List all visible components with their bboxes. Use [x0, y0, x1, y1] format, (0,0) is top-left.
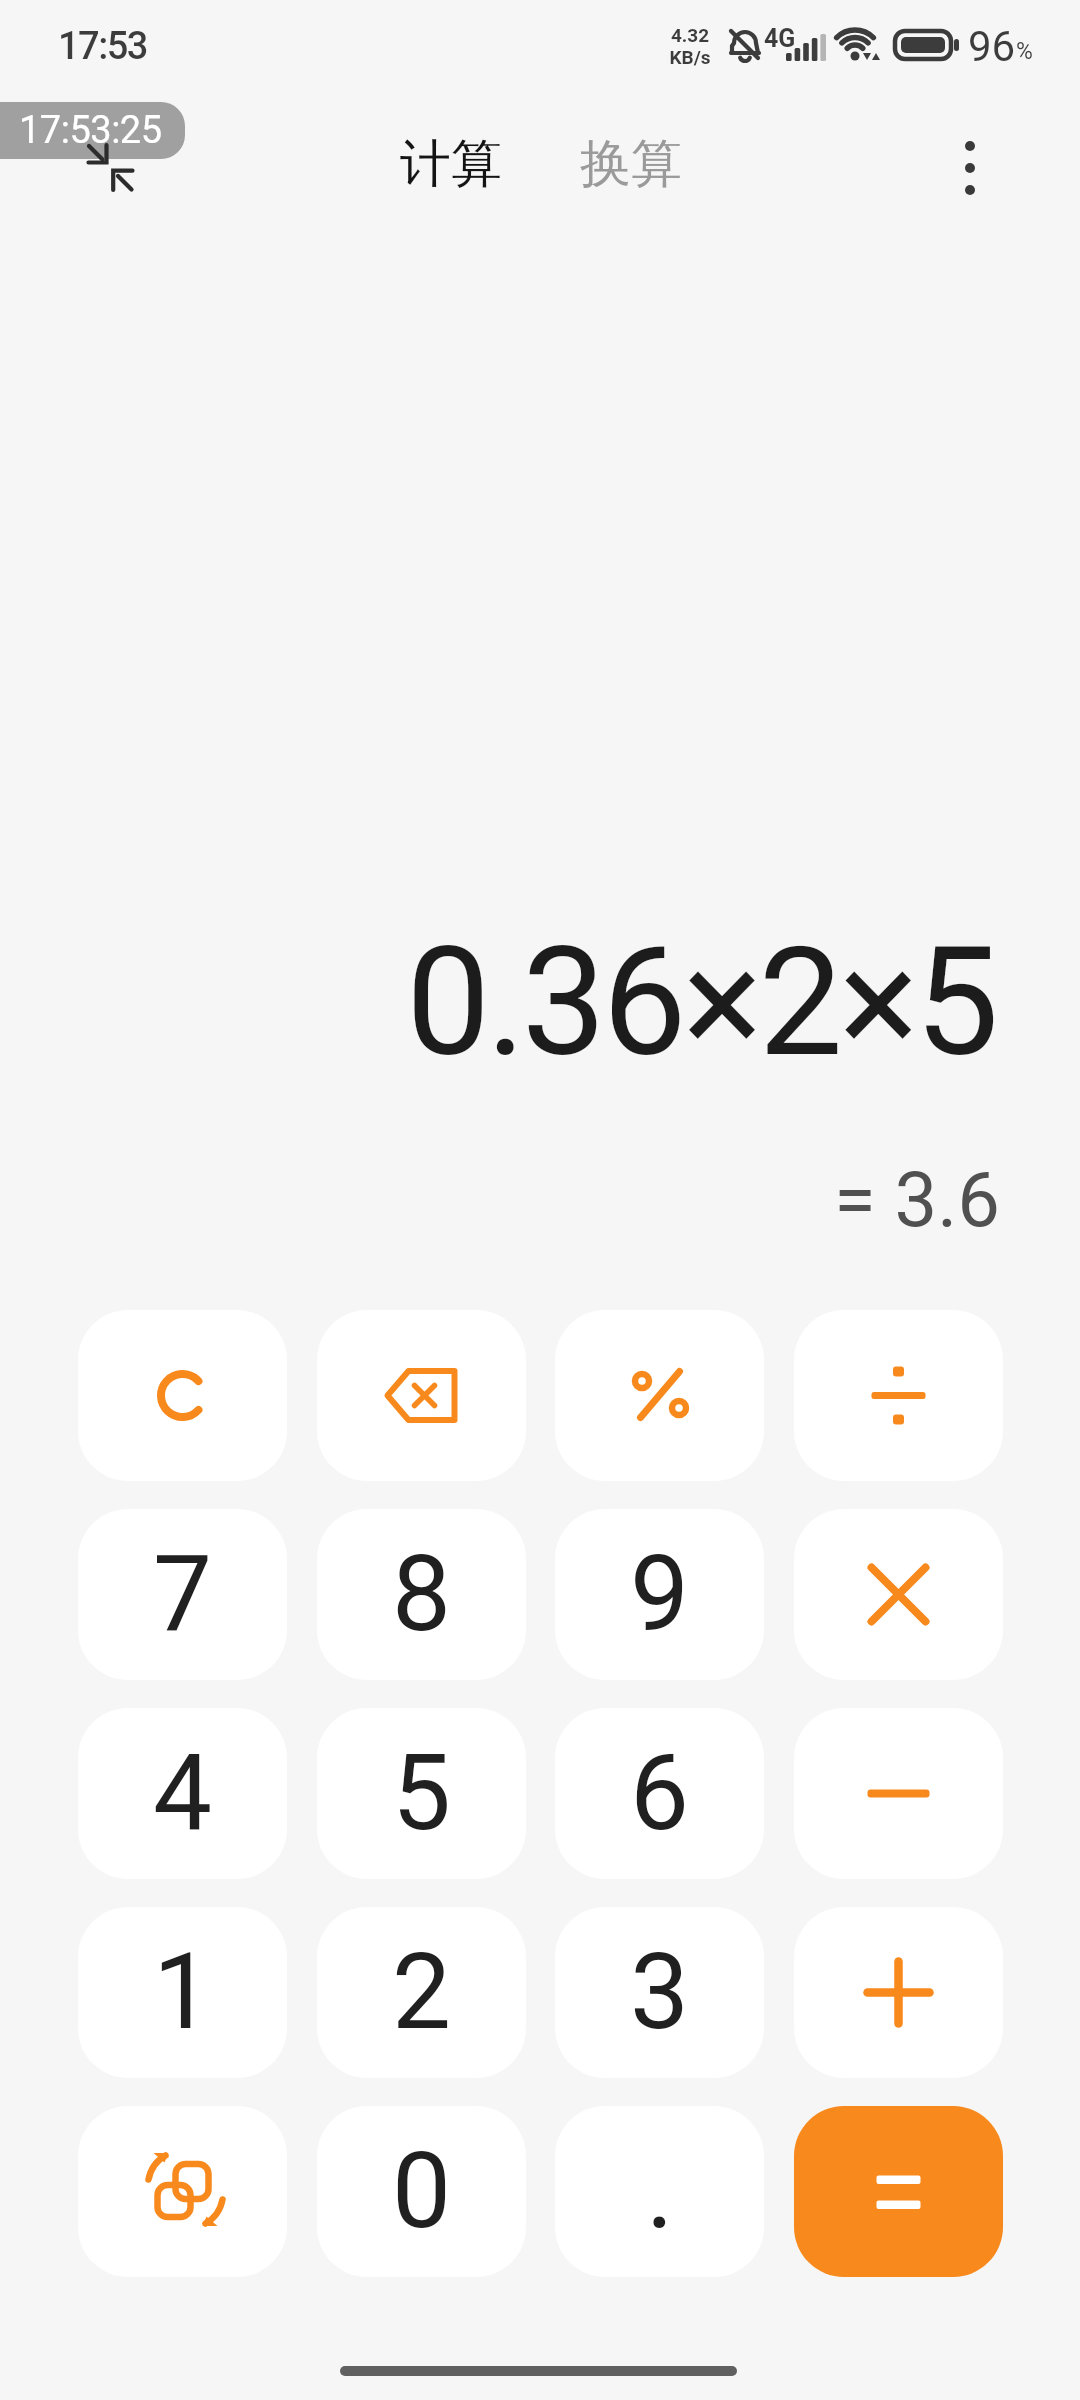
- button[interactable]: 0: [317, 2106, 526, 2277]
- button[interactable]: [794, 2106, 1003, 2277]
- staticText: 8: [392, 1533, 452, 1656]
- staticText: 换算: [580, 132, 682, 196]
- button[interactable]: 6: [555, 1708, 764, 1879]
- staticText: 5: [392, 1732, 452, 1855]
- button[interactable]: [78, 2106, 287, 2277]
- button[interactable]: 计算: [399, 132, 503, 196]
- staticText: 3: [630, 1931, 690, 2054]
- button[interactable]: 8: [317, 1509, 526, 1680]
- button[interactable]: [930, 130, 1010, 200]
- staticText: .: [646, 2130, 674, 2253]
- staticText: %: [1016, 38, 1033, 64]
- staticText: 0: [392, 2130, 452, 2253]
- button[interactable]: [794, 1708, 1003, 1879]
- staticText: 4: [153, 1732, 213, 1855]
- button[interactable]: 1: [78, 1907, 287, 2078]
- button[interactable]: [555, 1310, 764, 1481]
- staticText: 96: [968, 22, 1016, 66]
- button[interactable]: 9: [555, 1509, 764, 1680]
- staticText: 17:53: [58, 24, 147, 66]
- staticText: 4G: [764, 24, 796, 50]
- staticText: 17:53:25: [19, 108, 162, 153]
- button[interactable]: [794, 1907, 1003, 2078]
- button[interactable]: 3: [555, 1907, 764, 2078]
- button[interactable]: [794, 1509, 1003, 1680]
- button[interactable]: 5: [317, 1708, 526, 1879]
- staticText: = 3.6: [834, 1155, 1001, 1241]
- button[interactable]: [794, 1310, 1003, 1481]
- staticText: 4.32 KB/s: [669, 24, 711, 69]
- staticText: 7: [153, 1533, 213, 1656]
- staticText: 计算: [400, 132, 502, 196]
- button[interactable]: .: [555, 2106, 764, 2277]
- staticText: 9: [630, 1533, 690, 1656]
- staticText: 2: [392, 1931, 452, 2054]
- button[interactable]: [317, 1310, 526, 1481]
- staticText: 0.36×2×5: [406, 915, 996, 1080]
- button[interactable]: 4: [78, 1708, 287, 1879]
- staticText: 1: [153, 1931, 213, 2054]
- button[interactable]: [78, 1310, 287, 1481]
- staticText: 6: [630, 1732, 690, 1855]
- button[interactable]: 换算: [574, 132, 688, 196]
- button[interactable]: 2: [317, 1907, 526, 2078]
- button[interactable]: 7: [78, 1509, 287, 1680]
